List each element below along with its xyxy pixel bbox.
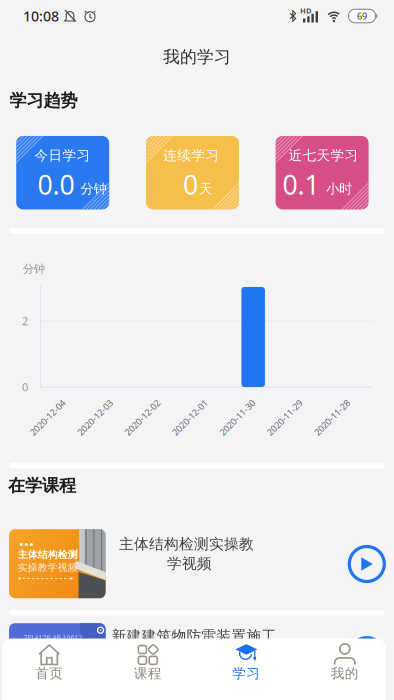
staticText: 2020-12-03 (72, 411, 118, 424)
button[interactable]: 学习 (213, 643, 279, 683)
staticText: 0 (183, 166, 198, 202)
staticText: 在学课程 (8, 475, 76, 496)
staticText: 69 (357, 10, 367, 22)
staticText: 0 (22, 380, 28, 394)
staticText: 7F1417B-4B-10612 (23, 633, 82, 642)
staticText: 学习趋势 (9, 90, 77, 111)
staticText: 2020-12-01 (167, 411, 213, 424)
staticText: 2020-12-02 (119, 411, 165, 424)
staticText: 2 (22, 314, 28, 328)
staticText: 主体结构检测实操教 (119, 535, 254, 553)
staticText: 主体结构检测 (18, 549, 78, 561)
staticText: 学习 (232, 665, 260, 682)
staticText: 我的学习 (163, 46, 231, 68)
staticText: 实操教学视频 (17, 561, 77, 574)
staticText: 新建建筑物防雷装置施工 (111, 627, 276, 645)
staticText: 小时 (326, 180, 352, 197)
staticText: 10:08 (23, 6, 59, 26)
staticText: 天 (199, 180, 212, 197)
staticText: 2020-11-30 (214, 411, 260, 424)
staticText: 2020-11-29 (262, 411, 308, 424)
staticText: 近七天学习 (288, 147, 358, 164)
staticText: 连续学习 (163, 147, 219, 164)
button[interactable]: 主体结构检测 (9, 529, 385, 598)
staticText: 今日学习 (34, 147, 90, 164)
staticText: 分钟 (23, 262, 45, 276)
staticText: 0.1 (282, 166, 319, 202)
staticText: 0.0 (37, 166, 74, 202)
button[interactable]: 首页 (16, 643, 82, 683)
staticText: 首页 (35, 665, 63, 682)
staticText: 学视频 (167, 554, 212, 573)
staticText: HD (300, 5, 311, 16)
staticText: 2020-12-04 (25, 411, 71, 424)
staticText: 我的 (331, 665, 359, 682)
button[interactable]: 7F1417B-4B-10612 (9, 623, 385, 692)
button[interactable]: 课程 (115, 643, 181, 683)
staticText: 课程 (134, 665, 162, 682)
staticText: 2020-11-28 (309, 411, 355, 424)
staticText: 分钟 (80, 180, 106, 197)
button[interactable]: 我的 (312, 643, 378, 683)
